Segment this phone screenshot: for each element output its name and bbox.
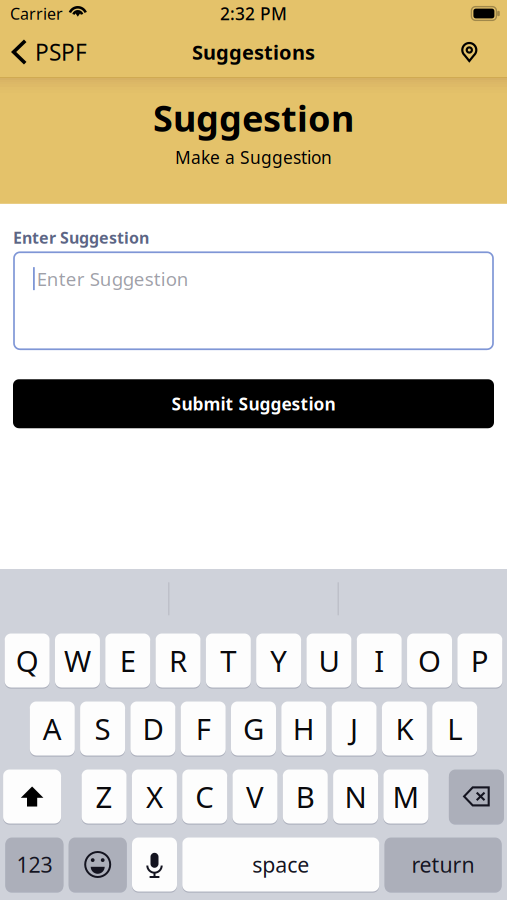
- staticText: Suggestions: [192, 39, 315, 65]
- button[interactable]: Delete: [449, 768, 504, 825]
- button[interactable]: N: [333, 768, 378, 825]
- staticText: O: [418, 641, 441, 680]
- staticText: 123: [16, 850, 52, 879]
- staticText: Make a Suggestion: [175, 146, 332, 169]
- staticText: R: [169, 641, 187, 680]
- staticText: E: [120, 641, 136, 680]
- staticText: 2:32 PM: [220, 2, 287, 25]
- staticText: N: [345, 777, 367, 816]
- staticText: B: [296, 777, 315, 816]
- staticText: T: [220, 641, 236, 680]
- button[interactable]: J: [332, 700, 377, 757]
- button[interactable]: Z: [82, 768, 127, 825]
- button[interactable]: Q: [5, 632, 50, 689]
- button[interactable]: L: [432, 700, 477, 757]
- button[interactable]: K: [382, 700, 427, 757]
- staticText: return: [412, 850, 475, 879]
- button[interactable]: S: [80, 700, 125, 757]
- button[interactable]: Dictation: [132, 836, 177, 893]
- staticText: M: [392, 777, 419, 816]
- button[interactable]: F: [181, 700, 226, 757]
- staticText: space: [252, 850, 309, 879]
- button[interactable]: R: [155, 632, 200, 689]
- staticText: I: [374, 641, 384, 680]
- staticText: P: [471, 641, 489, 680]
- button[interactable]: V: [232, 768, 277, 825]
- staticText: Y: [270, 641, 287, 680]
- staticText: L: [447, 709, 462, 748]
- button[interactable]: P: [457, 632, 502, 689]
- button[interactable]: return: [385, 836, 502, 893]
- staticText: D: [142, 709, 163, 748]
- staticText: U: [318, 641, 339, 680]
- button[interactable]: W: [55, 632, 100, 689]
- staticText: X: [146, 777, 163, 816]
- staticText: C: [195, 777, 214, 816]
- button[interactable]: I: [357, 632, 402, 689]
- button[interactable]: B: [283, 768, 328, 825]
- staticText: F: [196, 709, 211, 748]
- button[interactable]: X: [132, 768, 177, 825]
- staticText: V: [246, 777, 264, 816]
- button[interactable]: E: [105, 632, 150, 689]
- staticText: Q: [16, 641, 39, 680]
- button[interactable]: Location: [436, 35, 507, 69]
- button[interactable]: O: [407, 632, 452, 689]
- staticText: W: [64, 641, 91, 680]
- button[interactable]: C: [182, 768, 227, 825]
- button[interactable]: M: [383, 768, 428, 825]
- button[interactable]: H: [281, 700, 326, 757]
- staticText: Z: [96, 777, 113, 816]
- button[interactable]: Emoji: [69, 836, 127, 893]
- button[interactable]: A: [30, 700, 75, 757]
- staticText: G: [243, 709, 264, 748]
- staticText: Submit Suggestion: [171, 392, 335, 415]
- button[interactable]: 123: [5, 836, 63, 893]
- staticText: Enter Suggestion: [37, 266, 189, 291]
- button[interactable]: T: [206, 632, 251, 689]
- staticText: A: [43, 709, 62, 748]
- staticText: Enter Suggestion: [13, 227, 149, 248]
- button[interactable]: U: [306, 632, 351, 689]
- button[interactable]: G: [231, 700, 276, 757]
- staticText: K: [395, 709, 413, 748]
- staticText: Suggestion: [153, 94, 354, 142]
- button[interactable]: Y: [256, 632, 301, 689]
- button[interactable]: D: [130, 700, 175, 757]
- staticText: H: [293, 709, 315, 748]
- button[interactable]: space: [182, 836, 379, 893]
- button[interactable]: Submit Suggestion: [13, 379, 494, 428]
- button[interactable]: PSPF: [0, 31, 97, 73]
- staticText: J: [350, 709, 358, 748]
- staticText: S: [95, 709, 111, 748]
- staticText: PSPF: [35, 37, 87, 67]
- staticText: Carrier: [10, 3, 63, 24]
- button[interactable]: Shift: [3, 768, 61, 825]
